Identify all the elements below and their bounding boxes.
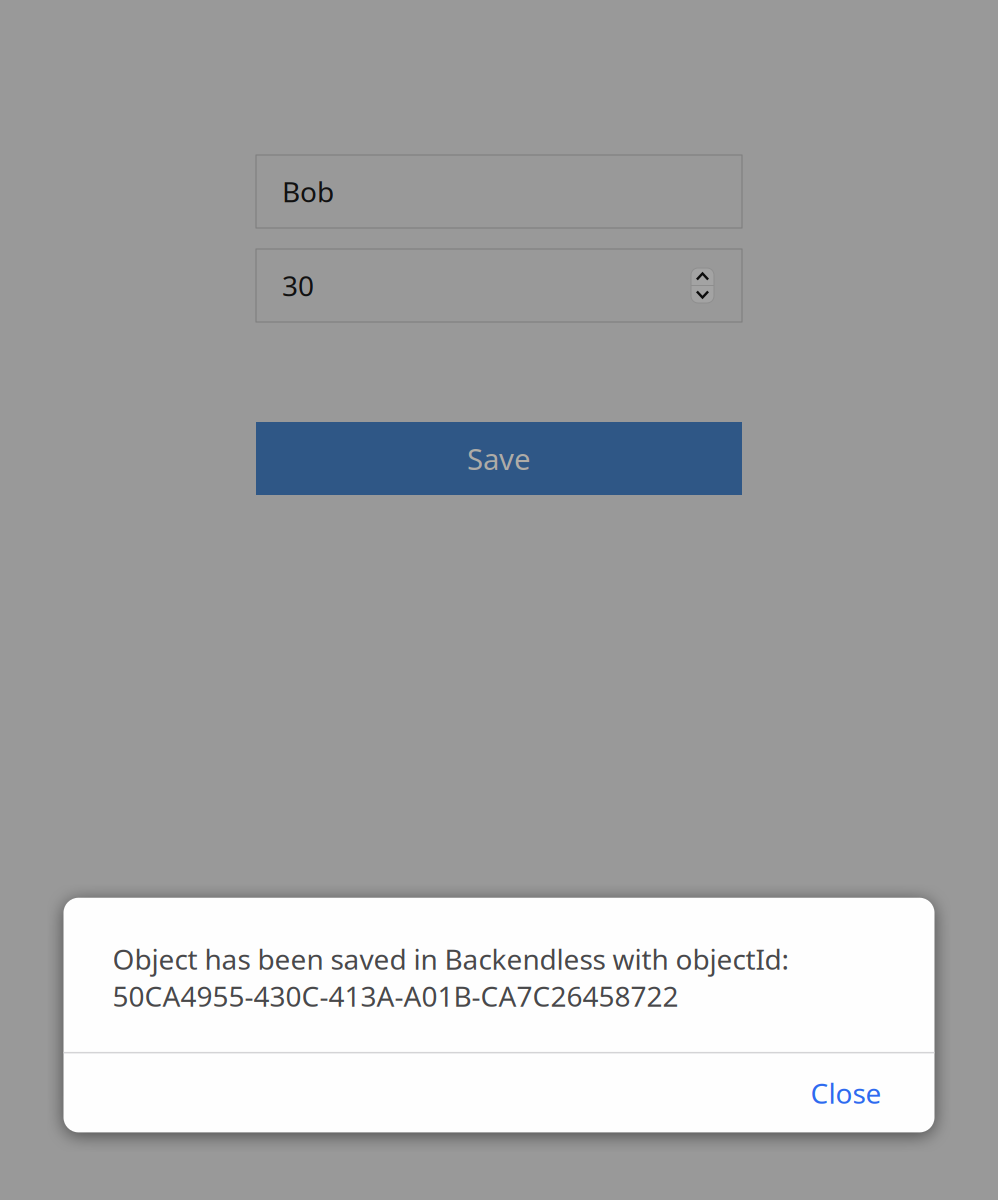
button[interactable]: Decrease value <box>691 286 714 303</box>
button[interactable]: 30 <box>256 249 742 322</box>
button[interactable]: Bob <box>256 155 742 228</box>
button[interactable]: Increase value <box>691 268 714 285</box>
button[interactable]: Close <box>63 1053 934 1132</box>
staticText: 30 <box>282 267 314 304</box>
button[interactable]: Save <box>256 422 742 495</box>
staticText: 50CA4955-430C-413A-A01B-CA7C26458722 <box>112 977 678 1015</box>
staticText: Save <box>467 439 531 478</box>
staticText: Close <box>810 1074 881 1111</box>
staticText: Object has been saved in Backendless wit… <box>112 940 789 977</box>
staticText: Bob <box>282 173 334 210</box>
